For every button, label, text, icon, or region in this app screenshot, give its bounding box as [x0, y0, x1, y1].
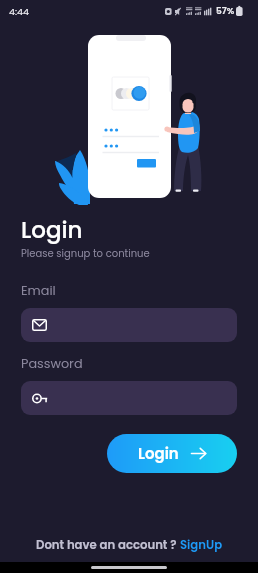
staticText: SignUp: [180, 537, 223, 553]
staticText: 4:44: [9, 5, 29, 18]
other: Password: [32, 393, 48, 404]
staticText: Please signup to continue: [21, 246, 150, 260]
button[interactable]: SignUp: [180, 537, 223, 553]
staticText: Password: [21, 355, 83, 373]
other: Submit: [191, 447, 207, 460]
staticText: Login: [21, 214, 83, 246]
button[interactable]: Password: [21, 381, 237, 415]
button[interactable]: Login: [107, 434, 237, 473]
other: Email: [32, 319, 47, 331]
staticText: Email: [21, 282, 56, 300]
staticText: 57%: [216, 5, 235, 18]
button[interactable]: Email: [21, 308, 237, 342]
staticText: Login: [138, 443, 179, 464]
staticText: Dont have an account ?: [36, 537, 177, 553]
